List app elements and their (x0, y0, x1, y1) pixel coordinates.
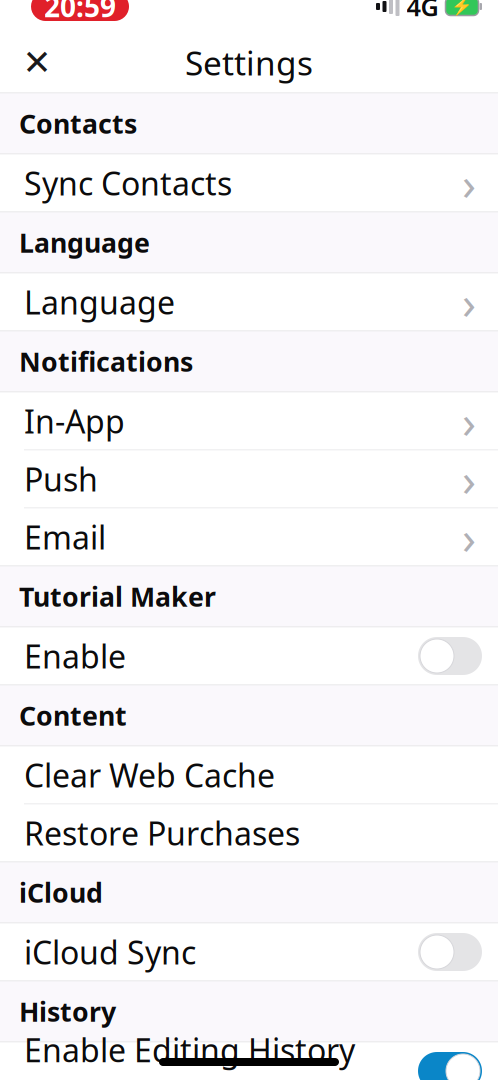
button[interactable]: Sync Contacts (0, 154, 498, 211)
staticText: 20:59 (44, 0, 116, 25)
staticText: iCloud (19, 875, 103, 910)
button[interactable]: In-App (0, 392, 498, 449)
button[interactable]: Language (0, 273, 498, 330)
staticText: Enable Editing History Upload (24, 1028, 355, 1080)
staticText: ✕ (22, 43, 51, 82)
staticText: Settings (185, 40, 313, 85)
staticText: Push (24, 458, 98, 500)
staticText: › (462, 153, 476, 213)
button[interactable]: Close (11, 36, 63, 88)
staticText: Clear Web Cache (24, 754, 275, 796)
staticText: Restore Purchases (24, 812, 300, 854)
staticText: › (462, 272, 476, 332)
staticText: ⚡ (451, 0, 473, 16)
staticText: › (462, 449, 476, 509)
button[interactable]: Enable (0, 627, 498, 684)
staticText: Tutorial Maker (19, 579, 216, 614)
button[interactable]: Push (0, 450, 498, 507)
button[interactable]: Restore Purchases (0, 804, 498, 861)
staticText: Contacts (19, 106, 137, 141)
staticText: Sync Contacts (24, 162, 232, 204)
staticText: 4G (406, 0, 438, 23)
staticText: In-App (24, 400, 125, 442)
staticText: Enable (24, 635, 126, 677)
staticText: Language (19, 225, 150, 260)
button[interactable]: Email (0, 508, 498, 565)
staticText: History (19, 994, 116, 1029)
staticText: Language (24, 281, 175, 323)
button[interactable]: Clear Web Cache (0, 746, 498, 803)
staticText: › (462, 391, 476, 451)
staticText: Notifications (19, 344, 193, 379)
button[interactable]: Enable Editing History Upload (0, 1042, 498, 1080)
button[interactable]: iCloud Sync (0, 923, 498, 980)
staticText: › (462, 507, 476, 567)
staticText: iCloud Sync (24, 931, 196, 973)
staticText: Email (24, 516, 106, 558)
staticText: Content (19, 698, 127, 733)
